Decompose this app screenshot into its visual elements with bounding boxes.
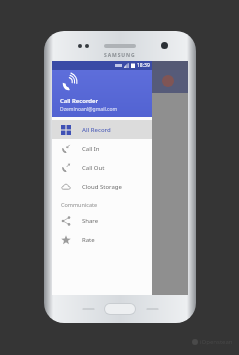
button[interactable]: Cloud Storage: [52, 177, 152, 196]
staticText: Call In: [82, 145, 100, 153]
staticText: SAMSUNG: [104, 52, 136, 59]
button[interactable]: Call In: [52, 139, 152, 158]
staticText: Dzeminoanl@gmail.com: [60, 106, 118, 113]
staticText: Call Out: [82, 164, 105, 172]
button[interactable]: Call Out: [52, 158, 152, 177]
other: Account avatar: [60, 75, 77, 92]
staticText: Rate: [82, 236, 95, 244]
staticText: Call Recorder: [60, 97, 99, 105]
button[interactable]: Rate: [52, 230, 152, 249]
button[interactable]: All Record: [52, 120, 152, 139]
staticText: iOpenstean: [200, 338, 233, 346]
staticText: Share: [82, 217, 99, 225]
staticText: Cloud Storage: [82, 183, 122, 191]
staticText: All Record: [82, 126, 111, 134]
staticText: Communicate: [61, 201, 98, 208]
staticText: 18:39: [137, 62, 150, 69]
button[interactable]: Share: [52, 211, 152, 230]
